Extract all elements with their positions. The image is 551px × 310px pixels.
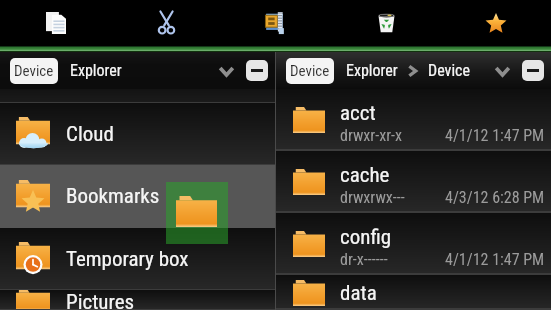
staticText: drwxr-xr-x <box>340 126 403 145</box>
staticText: cache <box>340 163 390 188</box>
staticText: Device <box>14 62 54 80</box>
staticText: Device <box>290 62 330 80</box>
staticText: acct <box>340 101 376 126</box>
button[interactable]: cache <box>276 151 551 213</box>
button[interactable]: Bookmark <box>441 0 551 46</box>
staticText: Temporary box <box>66 247 189 272</box>
button[interactable]: Close panel <box>522 60 544 81</box>
staticText: dr-x------ <box>340 250 388 269</box>
staticText: Device <box>428 61 470 80</box>
staticText: drwxrwx--x <box>340 306 408 310</box>
button[interactable]: Expand <box>210 56 242 86</box>
staticText: Explorer <box>346 61 398 80</box>
button[interactable]: Pictures <box>0 290 275 310</box>
button[interactable]: Delete <box>331 0 441 46</box>
button[interactable]: Temporary box <box>0 228 275 290</box>
button[interactable]: Cut <box>111 0 221 46</box>
staticText: 4/3/12 6:28 PM <box>445 188 545 207</box>
staticText: 4/3/12 6:28 PM <box>445 306 545 310</box>
staticText: drwxrwx--- <box>340 188 405 207</box>
button[interactable]: Copy <box>0 0 111 46</box>
staticText: data <box>340 281 377 306</box>
button[interactable]: data <box>276 275 551 310</box>
button[interactable]: Cloud <box>0 103 275 165</box>
staticText: config <box>340 225 392 250</box>
button[interactable]: Expand <box>486 56 518 86</box>
staticText: Explorer <box>70 61 122 80</box>
button[interactable]: Bookmarks <box>0 165 275 228</box>
staticText: 4/1/12 1:47 PM <box>445 126 545 145</box>
staticText: Bookmarks <box>66 184 160 209</box>
staticText: Pictures <box>66 290 135 310</box>
button[interactable]: acct <box>276 89 551 151</box>
button[interactable]: Device <box>10 58 58 84</box>
button[interactable]: Close panel <box>246 60 268 81</box>
button[interactable]: Compress <box>221 0 331 46</box>
staticText: Cloud <box>66 122 114 147</box>
button[interactable]: Device <box>286 58 334 84</box>
button[interactable]: config <box>276 213 551 275</box>
staticText: 4/1/12 1:47 PM <box>445 250 545 269</box>
